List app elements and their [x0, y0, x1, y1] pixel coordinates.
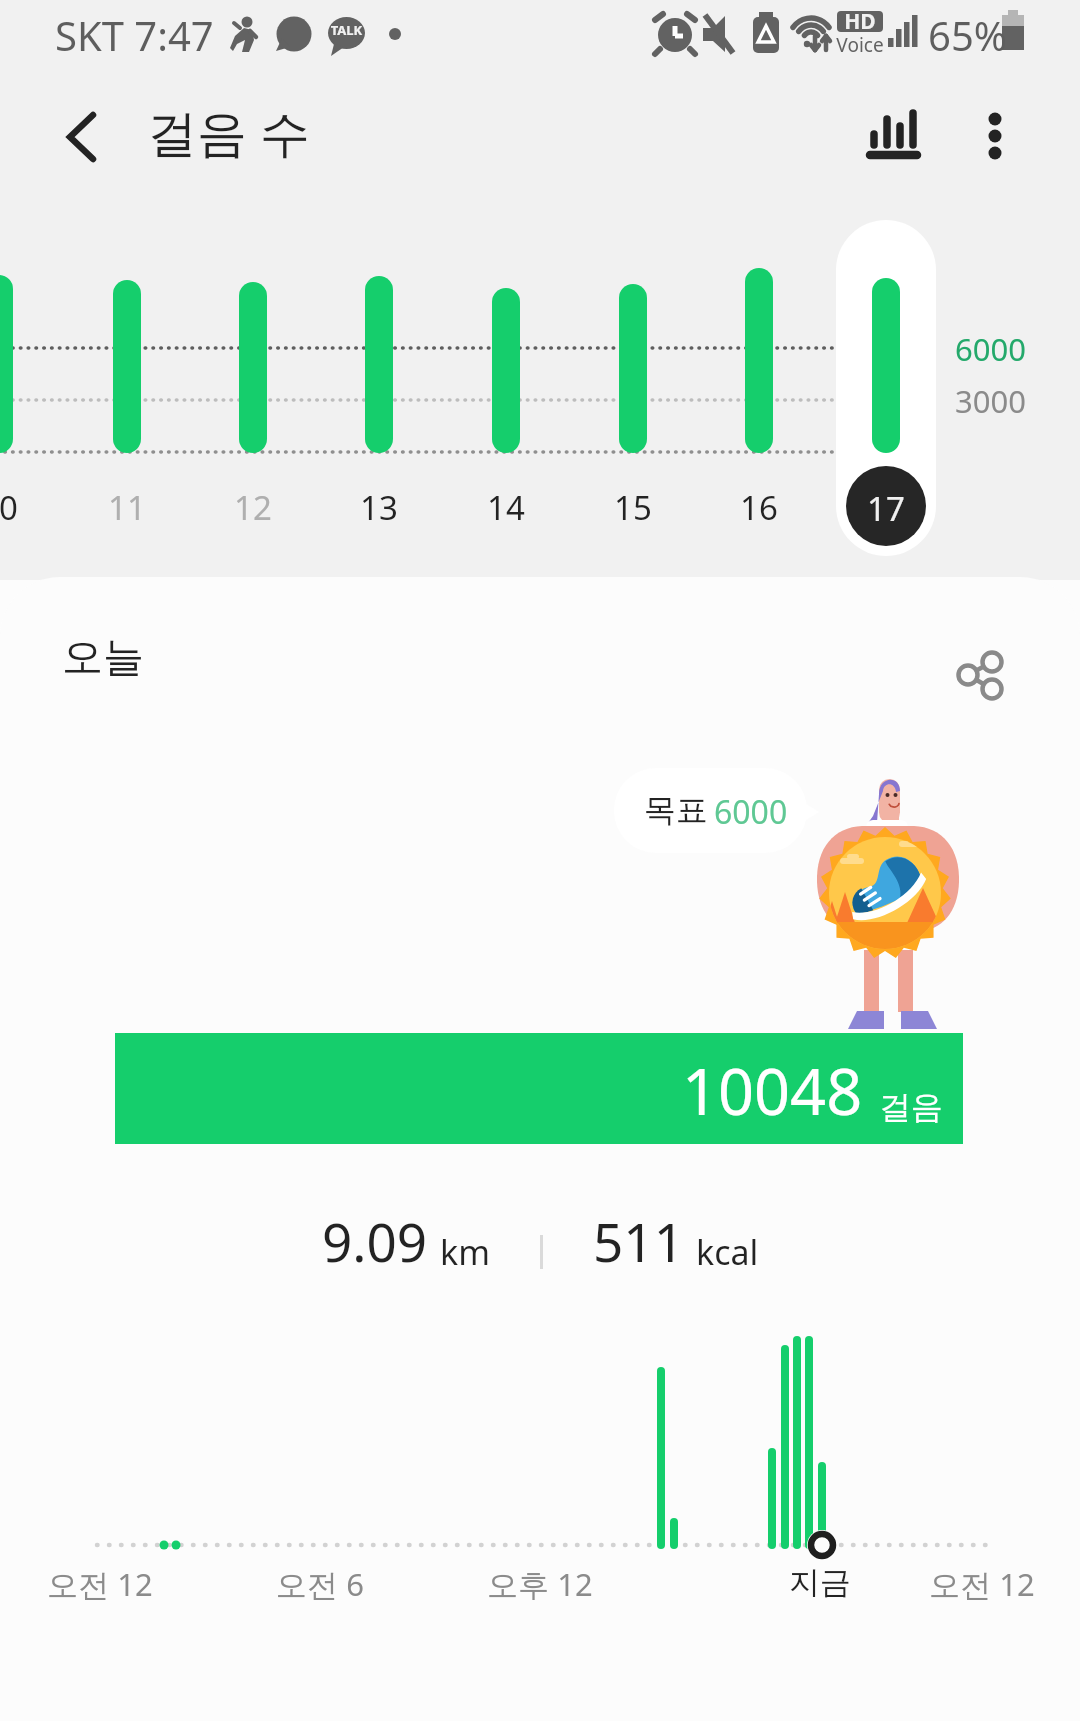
staticText: 오전 12: [0, 1563, 220, 1605]
button[interactable]: Back: [40, 95, 124, 179]
button[interactable]: Share: [937, 633, 1021, 717]
staticText: 오전 12: [862, 1563, 1080, 1605]
staticText: HD: [837, 7, 883, 36]
button[interactable]: Chart: [853, 92, 933, 172]
staticText: 17: [826, 486, 946, 531]
staticText: km: [440, 1229, 490, 1275]
button[interactable]: 12: [193, 210, 313, 560]
staticText: 3000: [955, 380, 1026, 422]
staticText: 65%: [928, 8, 1007, 62]
staticText: Voice: [834, 32, 886, 58]
staticText: 목표: [644, 790, 708, 830]
staticText: 511: [593, 1205, 684, 1277]
staticText: 걸음: [879, 1087, 943, 1127]
button[interactable]: 17: [826, 210, 946, 560]
button[interactable]: More options: [959, 100, 1031, 172]
button[interactable]: 11: [67, 210, 187, 560]
staticText: 13: [319, 485, 439, 530]
button[interactable]: 13: [319, 210, 439, 560]
staticText: 16: [699, 485, 819, 530]
staticText: SKT 7:47: [55, 8, 214, 62]
staticText: 10: [0, 485, 59, 530]
staticText: 6000: [955, 328, 1026, 370]
staticText: 10048: [682, 1048, 863, 1134]
staticText: 12: [193, 485, 313, 530]
button[interactable]: 15: [573, 210, 693, 560]
staticText: 9.09: [322, 1205, 428, 1277]
button[interactable]: 14: [446, 210, 566, 560]
staticText: 지금: [700, 1563, 940, 1602]
staticText: 6000: [714, 790, 788, 834]
staticText: 14: [446, 485, 566, 530]
button[interactable]: 10: [0, 210, 59, 560]
button[interactable]: 10048: [115, 1033, 963, 1144]
button[interactable]: 16: [699, 210, 819, 560]
staticText: 11: [67, 485, 187, 530]
staticText: 오전 6: [200, 1563, 440, 1605]
staticText: TALK: [328, 21, 365, 39]
staticText: 오늘: [62, 632, 144, 684]
staticText: 15: [573, 485, 693, 530]
staticText: 걸음 수: [147, 98, 310, 166]
staticText: 오후 12: [420, 1563, 660, 1605]
staticText: kcal: [696, 1229, 759, 1275]
